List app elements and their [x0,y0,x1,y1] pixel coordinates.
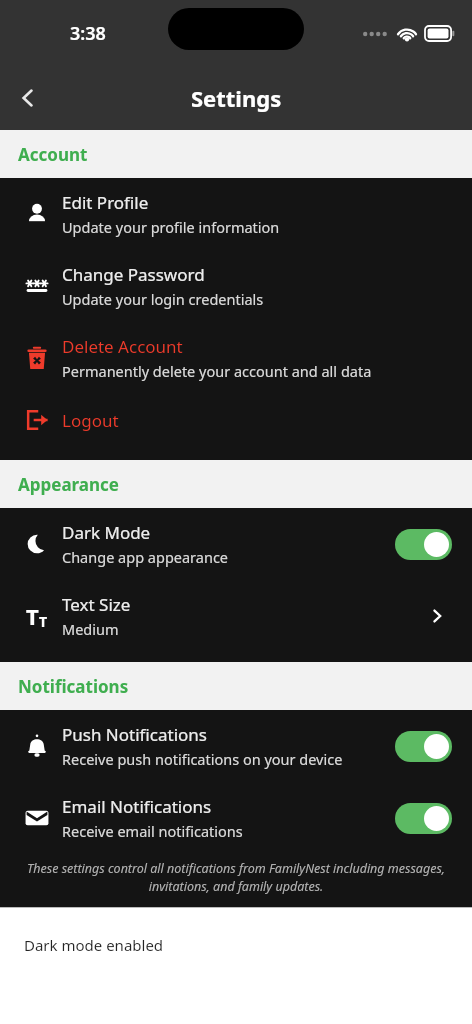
button[interactable]: Toggle [395,803,452,834]
staticText: Settings [191,83,282,113]
staticText: T [39,612,48,631]
button[interactable]: Logout [0,394,472,446]
staticText: Email Notifications [62,795,212,818]
staticText: These settings control all notifications… [26,860,446,895]
staticText: Appearance [18,473,119,496]
button[interactable]: Delete Account [0,322,472,394]
button[interactable]: Back [0,70,56,126]
staticText: Change app appearance [62,547,229,567]
staticText: Medium [62,619,119,639]
staticText: Receive email notifications [62,821,243,841]
button[interactable]: Open [422,601,452,631]
staticText: T [26,601,39,631]
button[interactable]: Toggle [395,529,452,560]
staticText: Delete Account [62,335,183,358]
button[interactable]: Change Password [0,250,472,322]
staticText: Push Notifications [62,723,207,746]
staticText: Update your login credentials [62,289,264,309]
button[interactable]: Email Notifications [0,782,472,854]
staticText: Dark mode enabled [24,935,164,955]
button[interactable]: Dark Mode [0,508,472,580]
button[interactable]: Toggle [395,731,452,762]
staticText: Edit Profile [62,191,149,214]
staticText: Logout [62,409,119,432]
button[interactable]: Push Notifications [0,710,472,782]
staticText: Dark Mode [62,521,151,544]
staticText: Permanently delete your account and all … [62,361,372,381]
staticText: Change Password [62,263,205,286]
staticText: 3:38 [70,21,106,46]
button[interactable]: T [0,580,472,652]
staticText: Receive push notifications on your devic… [62,749,382,769]
button[interactable]: Edit Profile [0,178,472,250]
staticText: Update your profile information [62,217,280,237]
staticText: Text Size [62,593,131,616]
staticText: Account [18,143,88,166]
staticText: Notifications [18,675,129,698]
